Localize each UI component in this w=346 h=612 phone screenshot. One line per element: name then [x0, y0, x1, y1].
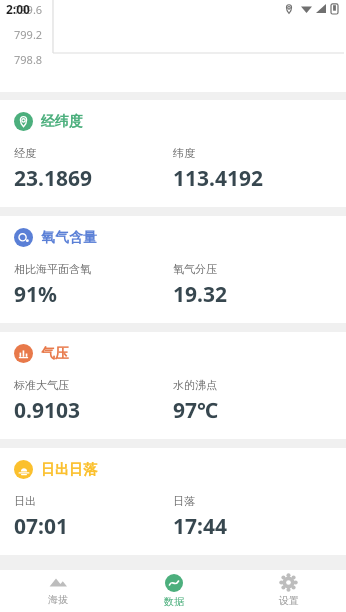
staticText: 经纬度 — [41, 113, 83, 131]
button[interactable]: Sunrise and sunset — [0, 448, 346, 555]
button[interactable]: Settings — [231, 570, 346, 612]
staticText: 19.32 — [173, 280, 227, 309]
staticText: 799.6 — [14, 2, 43, 17]
staticText: 799.2 — [14, 27, 43, 42]
staticText: 数据 — [164, 595, 184, 608]
staticText: 海拔 — [48, 593, 68, 606]
other: Settings — [280, 574, 297, 591]
staticText: 2:00 — [6, 1, 30, 17]
staticText: 798.8 — [14, 52, 43, 67]
staticText: 氧气含量 — [41, 229, 97, 247]
other: Altitude — [48, 574, 68, 590]
staticText: 91% — [14, 280, 57, 309]
staticText: 纬度 — [173, 146, 195, 160]
staticText: 设置 — [279, 594, 299, 607]
button[interactable]: Altitude — [0, 570, 116, 612]
other: Oxygen — [14, 228, 33, 247]
button[interactable]: Oxygen — [0, 216, 346, 323]
button[interactable]: Location — [0, 100, 346, 207]
other: Data — [165, 574, 183, 592]
staticText: 标准大气压 — [14, 378, 69, 392]
staticText: 97℃ — [173, 396, 219, 425]
staticText: 07:01 — [14, 512, 68, 541]
staticText: 氧气分压 — [173, 262, 217, 276]
staticText: 日落 — [173, 494, 195, 508]
staticText: 0.9103 — [14, 396, 80, 425]
staticText: 17:44 — [173, 512, 227, 541]
button[interactable]: Pressure — [0, 332, 346, 439]
other: Location — [14, 112, 33, 131]
staticText: 日出 — [14, 494, 36, 508]
staticText: 水的沸点 — [173, 378, 217, 392]
other: Pressure — [14, 344, 33, 363]
other: Sunrise and sunset — [14, 460, 33, 479]
staticText: 气压 — [41, 345, 69, 363]
staticText: 113.4192 — [173, 164, 263, 193]
button[interactable]: Data — [116, 570, 231, 612]
staticText: 经度 — [14, 146, 36, 160]
staticText: 相比海平面含氧 — [14, 262, 91, 276]
staticText: 23.1869 — [14, 164, 92, 193]
staticText: 日出日落 — [41, 461, 97, 479]
